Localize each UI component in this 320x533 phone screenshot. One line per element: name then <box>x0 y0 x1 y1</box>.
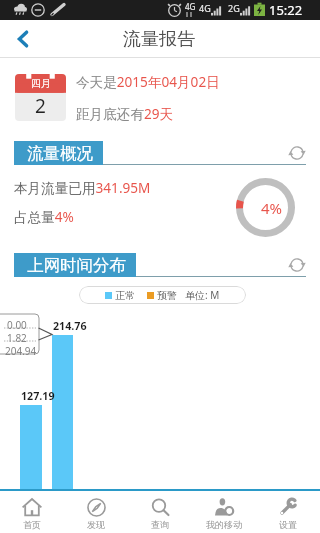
staticText: 15:22 <box>269 1 303 19</box>
staticText: 214.76 <box>53 319 87 334</box>
staticText: 占总量4% <box>14 207 74 226</box>
staticText: 上网时间分布 <box>27 255 126 276</box>
staticText: 2G <box>228 2 240 14</box>
button[interactable]: 我的移动 <box>192 491 256 533</box>
button[interactable]: 上网时间分布 <box>14 253 136 277</box>
staticText: 我的移动 <box>206 519 242 530</box>
button[interactable]: 查询 <box>128 491 192 533</box>
staticText: 127.19 <box>21 389 55 404</box>
staticText: 流量概况 <box>27 143 93 164</box>
staticText: 0.00 <box>7 318 27 332</box>
staticText: 四月 <box>31 77 51 90</box>
staticText: 查询 <box>151 519 169 530</box>
staticText: 预警 <box>157 289 177 302</box>
button[interactable]: 设置 <box>256 491 320 533</box>
staticText: 距月底还有29天 <box>76 104 174 123</box>
staticText: 4G <box>185 1 196 12</box>
staticText: 流量报告 <box>123 28 195 51</box>
button[interactable]: Refresh <box>289 145 305 161</box>
staticText: 首页 <box>23 519 41 530</box>
button[interactable]: 流量概况 <box>14 141 103 165</box>
button[interactable]: 发现 <box>64 491 128 533</box>
staticText: 单位: M <box>185 288 220 302</box>
staticText: 2 <box>35 93 46 119</box>
staticText: 204.94 <box>5 344 37 358</box>
staticText: 正常 <box>115 289 135 302</box>
staticText: 发现 <box>87 519 105 530</box>
button[interactable]: Refresh <box>289 257 305 273</box>
staticText: 设置 <box>279 519 297 530</box>
staticText: 1.82 <box>7 331 27 345</box>
button[interactable]: 首页 <box>0 491 64 533</box>
staticText: 今天是2015年04月02日 <box>76 72 220 91</box>
staticText: 本月流量已用341.95M <box>14 178 151 197</box>
staticText: 4G <box>199 2 211 14</box>
button[interactable]: Back <box>6 20 40 57</box>
staticText: 4% <box>261 198 283 218</box>
